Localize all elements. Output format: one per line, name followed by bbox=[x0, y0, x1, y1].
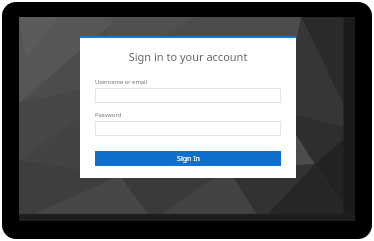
button[interactable]: Sign In bbox=[95, 151, 281, 166]
button[interactable] bbox=[95, 121, 281, 136]
staticText: Sign In bbox=[177, 154, 200, 164]
staticText: Sign in to your account bbox=[95, 49, 281, 64]
button[interactable] bbox=[95, 88, 281, 103]
staticText: Username or email bbox=[95, 78, 148, 86]
staticText: Password bbox=[95, 111, 122, 119]
